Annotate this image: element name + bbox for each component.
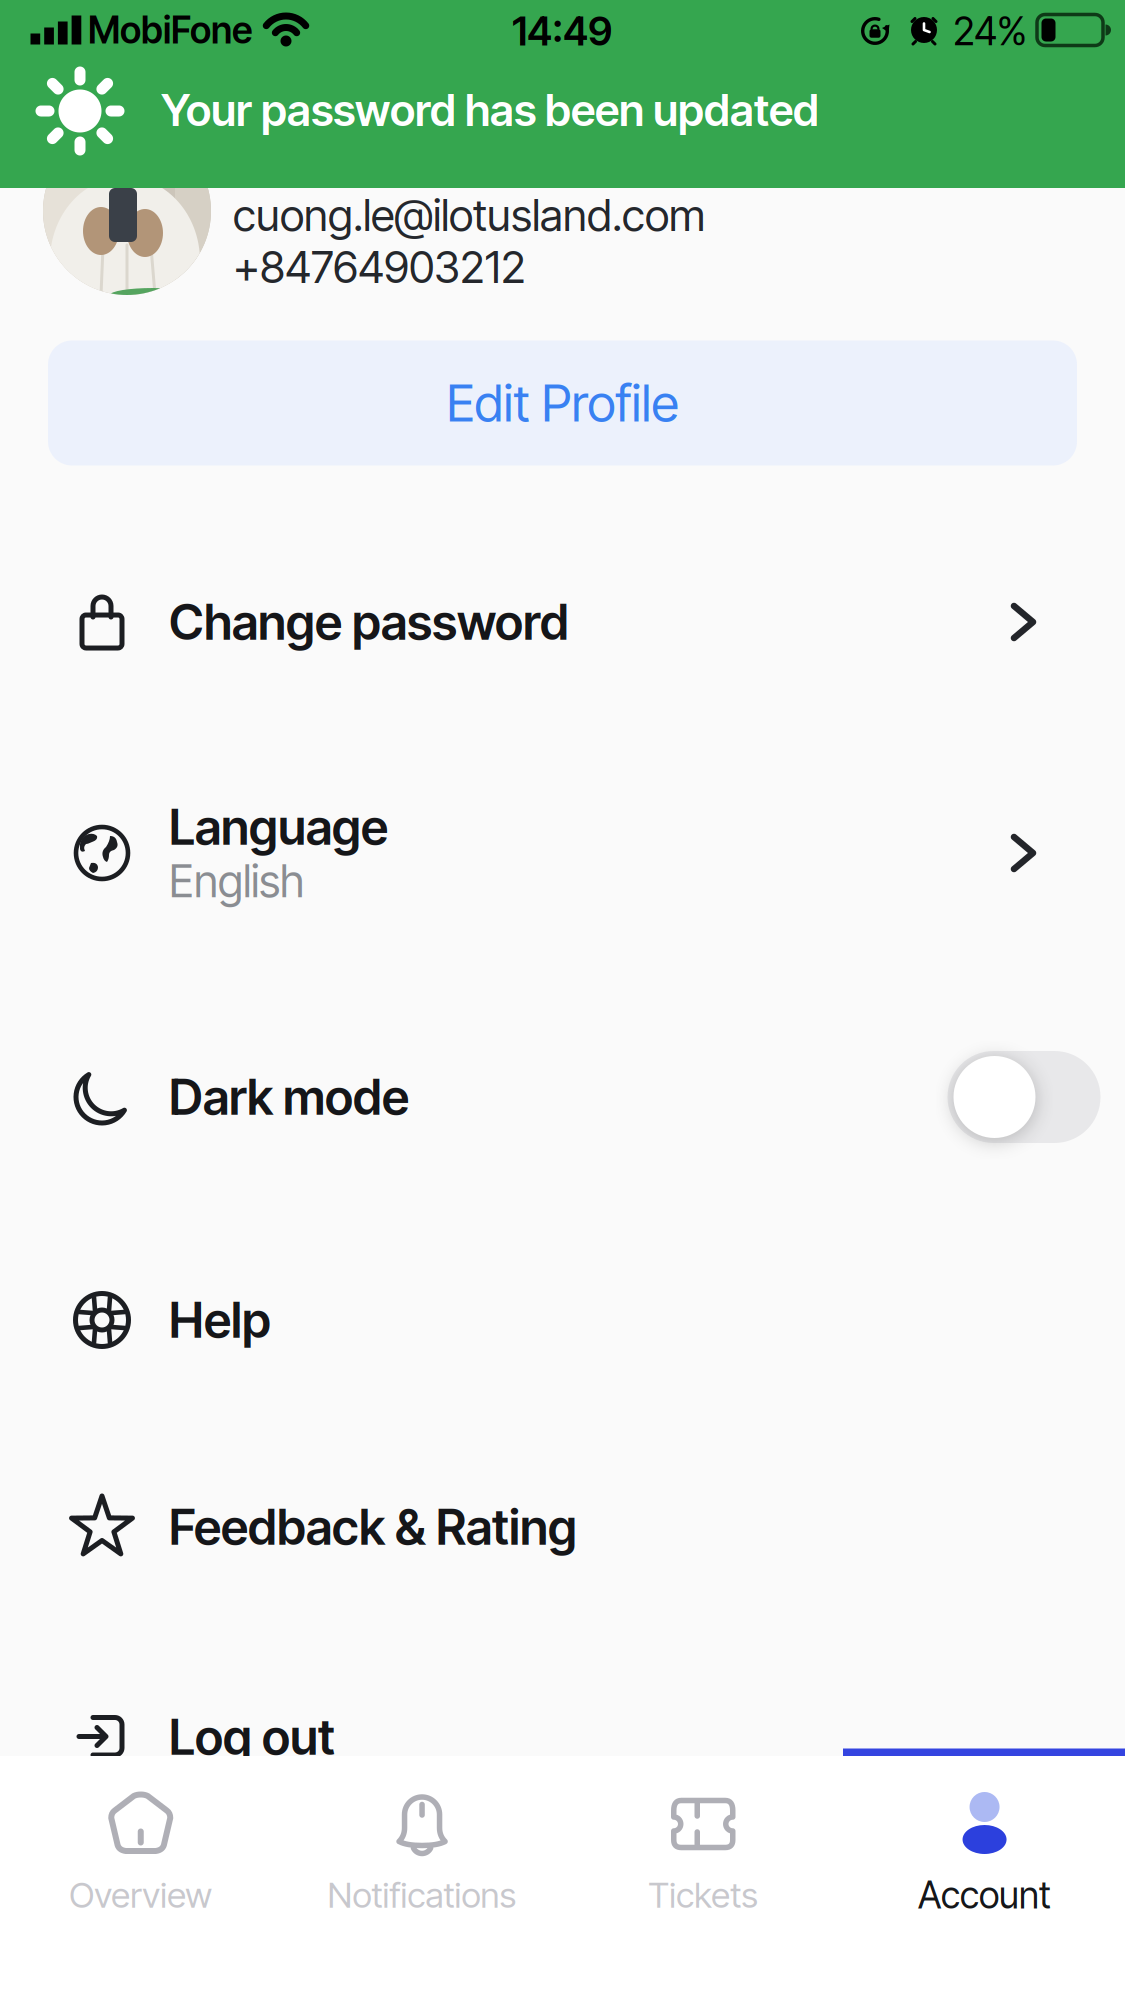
button[interactable]: Dark mode: [0, 1022, 1125, 1172]
button[interactable]: Language: [0, 778, 1125, 928]
staticText: 24%: [953, 7, 1027, 55]
staticText: Edit Profile: [446, 372, 678, 434]
button[interactable]: Edit Profile: [48, 340, 1077, 465]
staticText: 14:49: [512, 7, 612, 55]
button[interactable]: Dark mode: [947, 1051, 1100, 1143]
button[interactable]: Overview: [0, 1756, 281, 2001]
button[interactable]: Feedback & Rating: [0, 1452, 1125, 1602]
staticText: Feedback & Rating: [169, 1497, 577, 1557]
button[interactable]: Log out: [0, 1662, 1125, 1812]
staticText: English: [169, 854, 304, 908]
staticText: Help: [169, 1290, 271, 1350]
staticText: Tickets: [648, 1874, 758, 1916]
staticText: Change password: [169, 592, 569, 652]
button[interactable]: Account: [844, 1756, 1125, 2001]
staticText: Dark mode: [169, 1067, 409, 1127]
staticText: Language: [169, 797, 388, 857]
staticText: cuong.le@ilotusland.com: [233, 188, 705, 242]
button[interactable]: Change password: [0, 547, 1125, 697]
staticText: Notifications: [327, 1874, 516, 1916]
staticText: Account: [918, 1873, 1051, 1917]
button[interactable]: Help: [0, 1245, 1125, 1395]
staticText: MobiFone: [88, 8, 252, 52]
button[interactable]: Notifications: [281, 1756, 562, 2001]
staticText: Your password has been updated: [161, 83, 819, 137]
staticText: Log out: [169, 1707, 335, 1767]
staticText: Overview: [69, 1874, 212, 1916]
staticText: +84764903212: [233, 240, 526, 294]
button[interactable]: Tickets: [563, 1756, 844, 2001]
